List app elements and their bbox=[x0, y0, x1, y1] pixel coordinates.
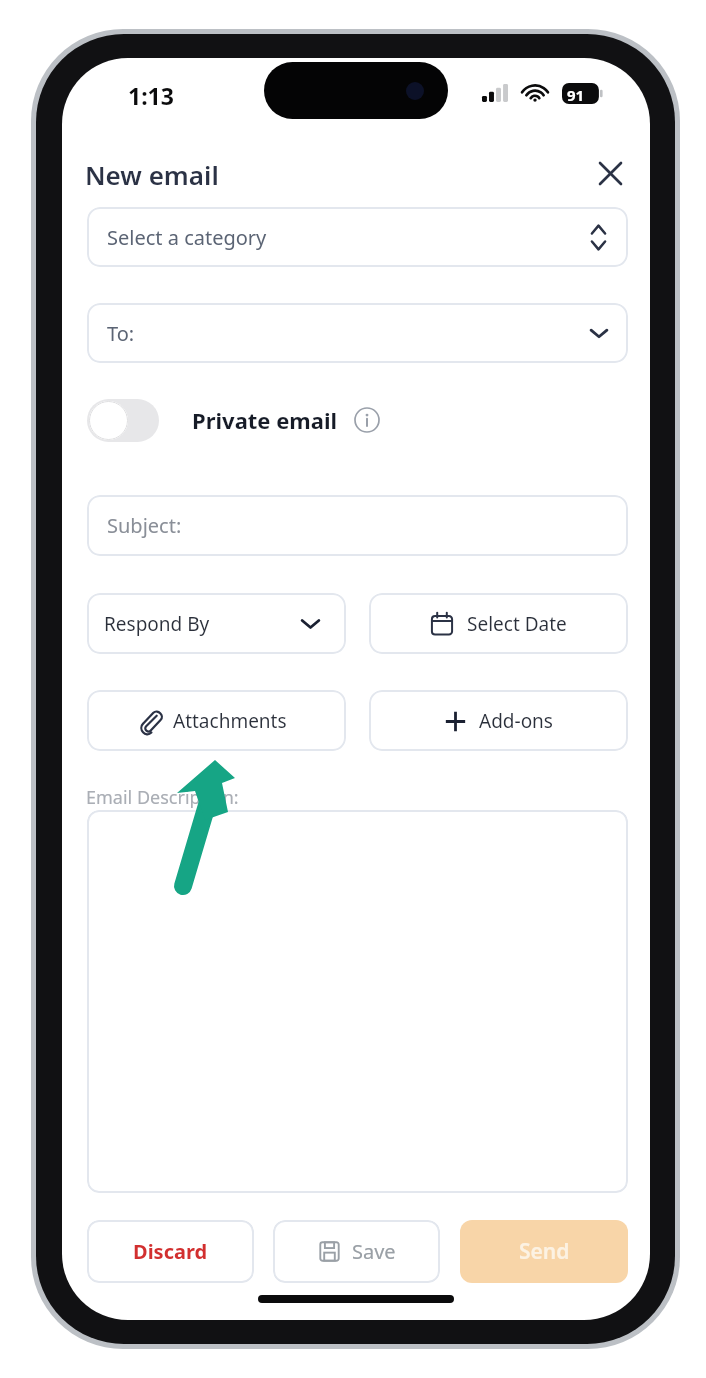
staticText: Add-ons bbox=[479, 708, 553, 734]
staticText: Email Description: bbox=[86, 785, 239, 810]
button[interactable]: Send bbox=[460, 1220, 628, 1283]
staticText: To: bbox=[107, 320, 135, 347]
button[interactable]: Select Date bbox=[369, 593, 628, 654]
button[interactable]: Discard bbox=[87, 1220, 254, 1283]
button[interactable]: Add-ons bbox=[369, 690, 628, 751]
button[interactable]: Info bbox=[351, 404, 383, 436]
button[interactable]: Close bbox=[586, 149, 634, 197]
staticText: 91 bbox=[567, 85, 585, 105]
button[interactable]: Private email bbox=[87, 395, 383, 445]
button[interactable] bbox=[87, 810, 628, 1193]
staticText: 1:13 bbox=[128, 80, 174, 111]
staticText: Private email bbox=[192, 405, 338, 435]
button[interactable]: To: bbox=[87, 303, 628, 363]
button[interactable]: Subject: bbox=[87, 495, 628, 556]
staticText: Send bbox=[519, 1237, 570, 1266]
button[interactable]: Attachments bbox=[87, 690, 346, 751]
button[interactable]: Select a category bbox=[87, 207, 628, 267]
staticText: Save bbox=[352, 1238, 396, 1265]
button[interactable]: Respond By bbox=[87, 593, 346, 654]
staticText: Select a category bbox=[107, 224, 267, 251]
staticText: Discard bbox=[133, 1238, 208, 1265]
staticText: New email bbox=[85, 157, 219, 192]
button[interactable]: Save bbox=[273, 1220, 440, 1283]
staticText: Respond By bbox=[104, 611, 210, 637]
staticText: Subject: bbox=[107, 512, 182, 539]
staticText: Select Date bbox=[467, 611, 567, 637]
staticText: Attachments bbox=[173, 708, 287, 734]
